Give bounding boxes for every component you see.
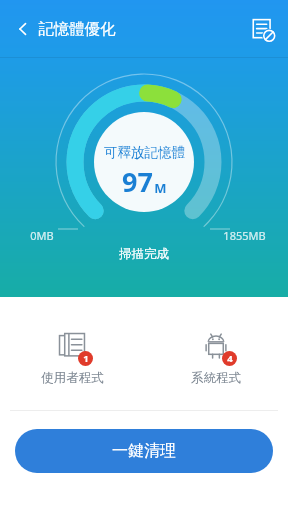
staticText: 1 [83,352,89,365]
button[interactable]: 一鍵清理 [15,429,273,473]
staticText: 0MB [30,228,54,243]
button[interactable]: 1 [0,325,144,390]
staticText: 一鍵清理 [112,441,176,461]
staticText: M [154,179,167,197]
staticText: 記憶體優化 [38,19,116,39]
button[interactable]: Back [6,12,40,46]
staticText: 1855MB [223,228,266,243]
staticText: 使用者程式 [41,370,104,386]
button[interactable]: Ignore list [244,11,280,47]
staticText: 可釋放記憶體 [104,144,185,161]
button[interactable]: 4 [144,325,288,390]
staticText: 掃描完成 [119,246,169,262]
staticText: 4 [227,352,233,365]
staticText: 97 [122,163,153,200]
staticText: 系統程式 [191,370,241,386]
